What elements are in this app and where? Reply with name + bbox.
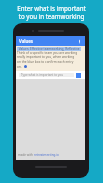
staticText: Values: Effective teamworking, Reflectiv… [17,47,81,51]
staticText: Think of a specific team you are working… [17,51,81,55]
staticText: really important to you, when working wi… [17,55,81,59]
staticText: Values [19,38,34,44]
button[interactable]: retreatmeeting.io [34,153,59,157]
staticText: made with [18,153,34,157]
button[interactable]: Values [16,36,85,46]
other: More options [77,39,82,44]
staticText: Enter what is important to you in teamwo… [0,4,103,20]
staticText: Type what is important to you [21,73,64,77]
button[interactable]: Type what is important to you [19,73,74,77]
staticText: on. [17,65,22,69]
staticText: on the blue box to confirm each entry be… [17,60,81,64]
